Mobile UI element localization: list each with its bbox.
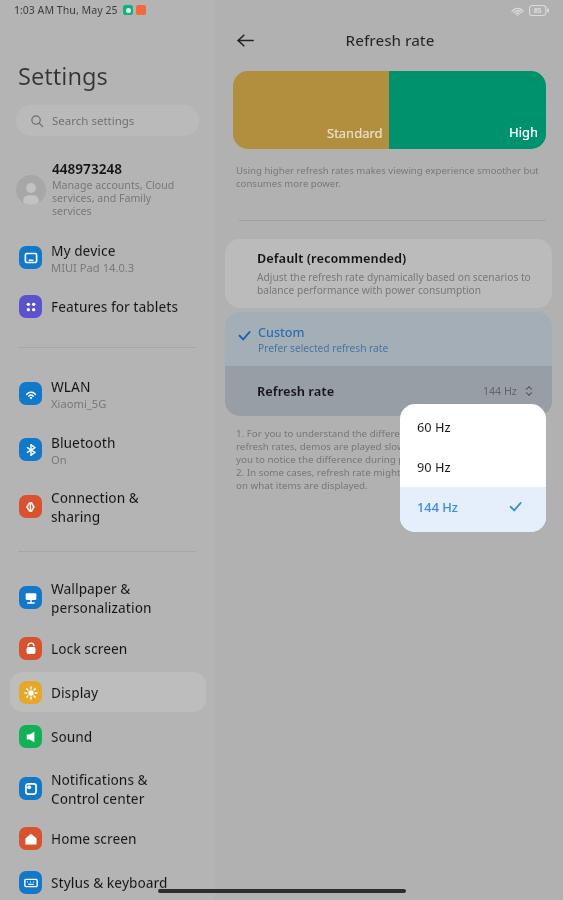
staticText: Manage accounts, Cloud services, and Fam… (52, 178, 175, 218)
button[interactable]: 144 Hz (400, 487, 546, 526)
staticText: Features for tablets (51, 297, 179, 316)
button[interactable] (10, 486, 206, 526)
button[interactable]: 60 Hz (400, 407, 546, 446)
staticText: My device (51, 241, 116, 260)
button[interactable]: 90 Hz (400, 447, 546, 486)
button[interactable] (10, 628, 206, 668)
button[interactable]: Refresh rate (225, 366, 552, 416)
staticText: Notifications & Control center (51, 770, 148, 808)
staticText: Xiaomi_5G (51, 396, 107, 411)
staticText: WLAN (51, 377, 91, 396)
button[interactable] (10, 862, 206, 900)
staticText: Custom (258, 324, 305, 341)
staticText: 1:03 AM Thu, May 25 (14, 3, 118, 17)
staticText: 85 (534, 6, 542, 15)
button[interactable] (10, 286, 206, 326)
staticText: 448973248 (52, 159, 122, 178)
button[interactable]: Default (recommended) (225, 239, 552, 308)
button[interactable] (10, 577, 206, 617)
staticText: Wallpaper & personalization (51, 579, 152, 617)
staticText: On (51, 452, 67, 467)
staticText: 144 Hz (483, 384, 517, 398)
button[interactable] (10, 155, 206, 221)
staticText: Settings (18, 60, 108, 92)
button[interactable]: High (389, 71, 546, 149)
staticText: 144 Hz (417, 498, 458, 515)
button[interactable] (10, 237, 206, 277)
staticText: Prefer selected refresh rate (258, 341, 389, 355)
staticText: Refresh rate (216, 30, 563, 51)
staticText: Using higher refresh rates makes viewing… (236, 164, 539, 190)
staticText: Home screen (51, 829, 137, 848)
staticText: Default (recommended) (257, 250, 407, 267)
staticText: 1. For you to understand the difference … (236, 427, 475, 492)
button[interactable]: Search settings (16, 105, 199, 136)
button[interactable] (10, 818, 206, 858)
button[interactable] (10, 672, 206, 712)
staticText: Lock screen (51, 639, 128, 658)
button[interactable] (10, 429, 206, 469)
button[interactable]: Standard (233, 71, 389, 149)
button[interactable] (10, 768, 206, 808)
staticText: MIUI Pad 14.0.3 (51, 260, 135, 275)
staticText: High (509, 123, 539, 141)
button[interactable]: Custom (225, 312, 552, 366)
button[interactable] (10, 373, 206, 413)
staticText: 90 Hz (417, 458, 451, 475)
staticText: Refresh rate (257, 383, 335, 400)
staticText: Stylus & keyboard (51, 873, 168, 892)
staticText: Connection & sharing (51, 488, 139, 526)
button[interactable] (10, 716, 206, 756)
button[interactable]: Back (229, 24, 261, 56)
staticText: Display (51, 683, 99, 702)
staticText: 60 Hz (417, 418, 451, 435)
staticText: Search settings (52, 113, 135, 129)
staticText: Sound (51, 727, 93, 746)
staticText: Standard (327, 124, 383, 142)
staticText: Adjust the refresh rate dynamically base… (257, 270, 531, 297)
staticText: Bluetooth (51, 433, 116, 452)
